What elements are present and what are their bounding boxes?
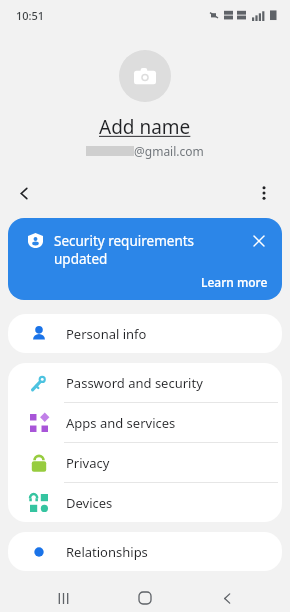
- button[interactable]: Change profile photo: [119, 50, 171, 102]
- staticText: Relationships: [66, 543, 148, 561]
- staticText: Learn more: [201, 274, 268, 290]
- button[interactable]: Back: [214, 585, 240, 611]
- button[interactable]: Personal info: [8, 314, 282, 353]
- staticText: Personal info: [66, 325, 147, 343]
- button[interactable]: Dismiss: [250, 232, 268, 250]
- button[interactable]: Back: [10, 179, 38, 207]
- button[interactable]: Home: [132, 585, 158, 611]
- staticText: Devices: [66, 494, 113, 512]
- button[interactable]: Add name: [99, 114, 191, 140]
- button[interactable]: Privacy: [8, 443, 282, 482]
- button[interactable]: Devices: [8, 483, 282, 522]
- button[interactable]: Recents: [50, 585, 76, 611]
- staticText: Security requirements updated: [54, 232, 242, 268]
- staticText: @gmail.com: [134, 143, 204, 159]
- staticText: Apps and services: [66, 414, 176, 432]
- button[interactable]: Security requirements updated: [8, 218, 282, 300]
- button[interactable]: More options: [250, 179, 278, 207]
- button[interactable]: Learn more: [201, 274, 268, 290]
- button[interactable]: Password and security: [8, 363, 282, 402]
- staticText: Password and security: [66, 374, 203, 392]
- button[interactable]: Relationships: [8, 532, 282, 571]
- staticText: 10:51: [16, 8, 45, 23]
- staticText: Privacy: [66, 454, 110, 472]
- button[interactable]: Apps and services: [8, 403, 282, 442]
- staticText: Add name: [99, 114, 191, 140]
